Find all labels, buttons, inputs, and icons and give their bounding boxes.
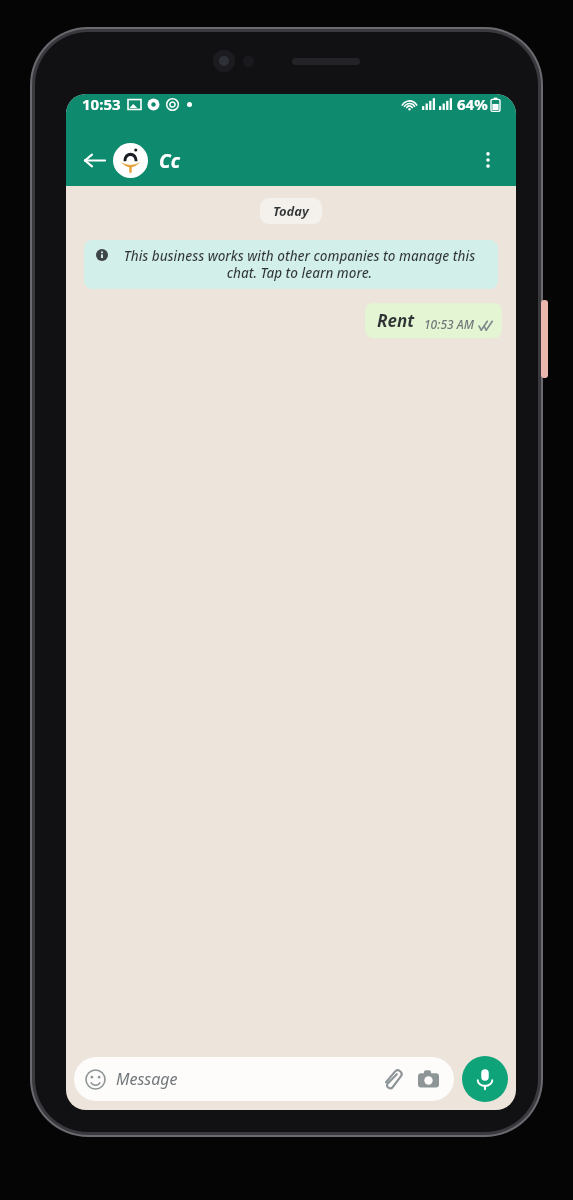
button[interactable]: More options — [471, 143, 505, 177]
staticText: This business works with other companies… — [113, 247, 486, 282]
staticText: 10:53 AM — [424, 316, 474, 332]
button[interactable]: Rent — [365, 303, 502, 338]
button[interactable]: Message — [74, 1057, 454, 1101]
button[interactable]: This business works with other companies… — [84, 240, 498, 289]
button[interactable]: Today — [260, 198, 322, 224]
staticText: Message — [116, 1068, 178, 1090]
button[interactable]: Camera — [413, 1064, 443, 1094]
staticText: 64% — [457, 94, 488, 114]
staticText: 10:53 — [82, 94, 121, 114]
staticText: Today — [273, 202, 309, 220]
button[interactable]: Cc — [113, 143, 471, 178]
button[interactable]: Back — [77, 143, 111, 177]
button[interactable]: Voice message — [462, 1056, 508, 1102]
button[interactable]: Attach — [377, 1064, 407, 1094]
staticText: Rent — [377, 309, 415, 332]
staticText: Cc — [159, 148, 180, 174]
